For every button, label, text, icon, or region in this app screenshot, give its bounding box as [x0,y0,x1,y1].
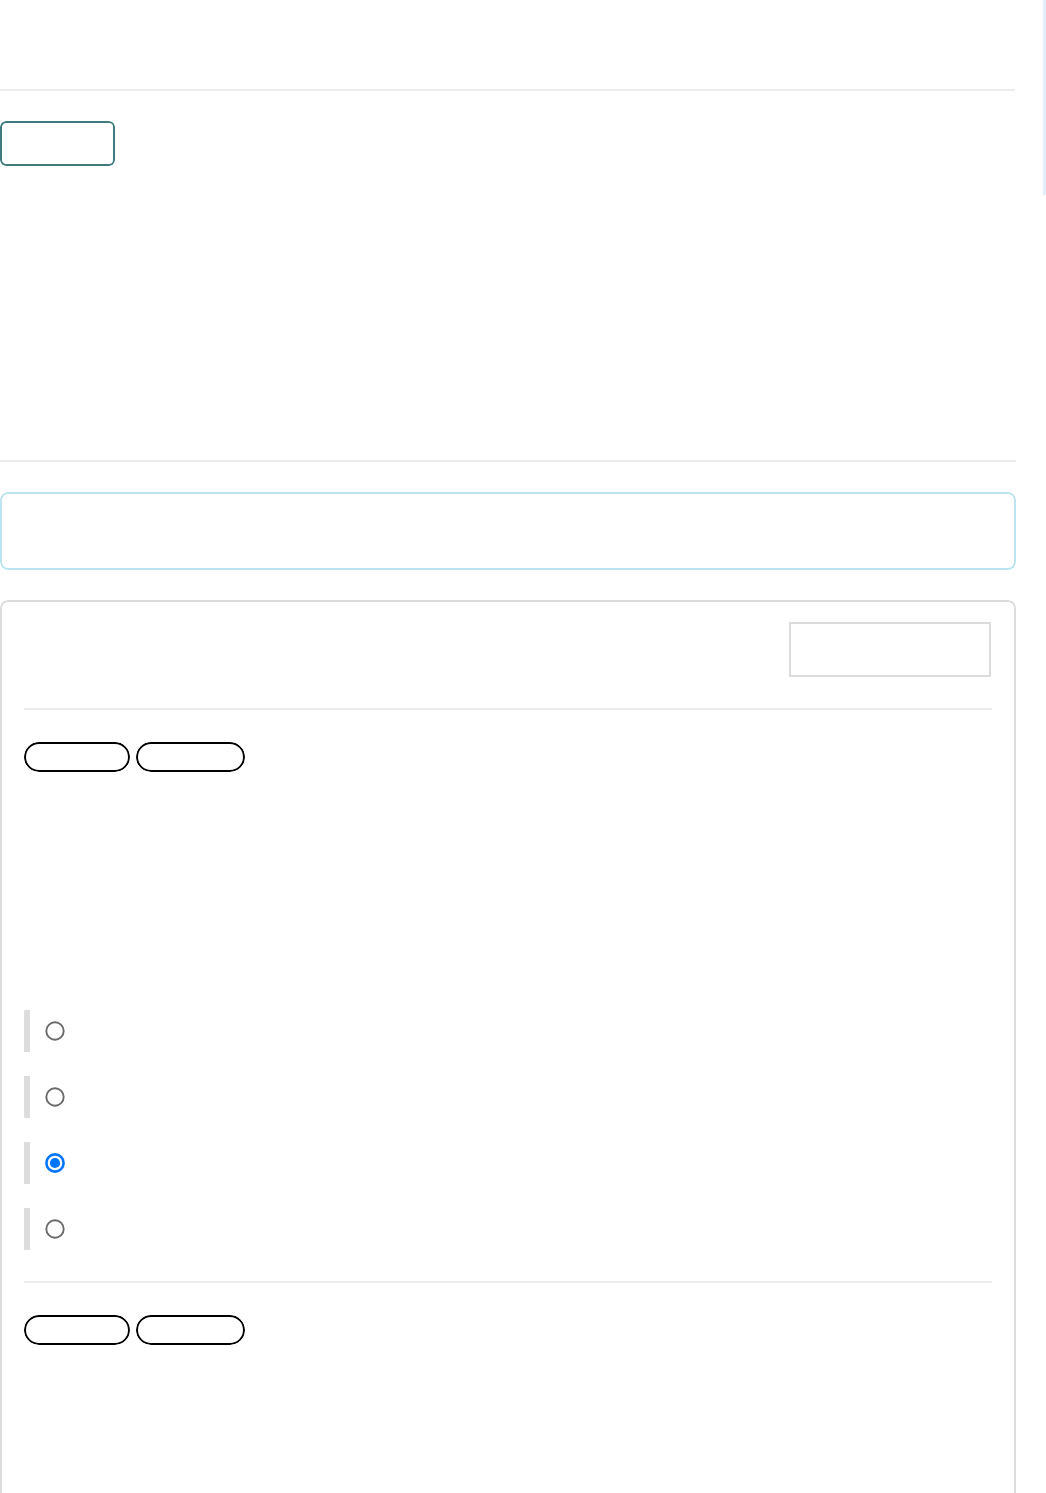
button[interactable]: Option 4 [39,1213,71,1245]
button[interactable]: Chip two [136,1315,245,1345]
button[interactable]: Option 3 [39,1147,71,1179]
button[interactable]: Chip one [24,742,130,772]
button[interactable]: Primary action [0,121,115,166]
button[interactable]: Chip one [24,1315,130,1345]
button[interactable]: Input field [789,622,991,677]
button[interactable]: Option 1 [39,1015,71,1047]
button[interactable]: Chip two [136,742,245,772]
button[interactable]: Option 2 [39,1081,71,1113]
